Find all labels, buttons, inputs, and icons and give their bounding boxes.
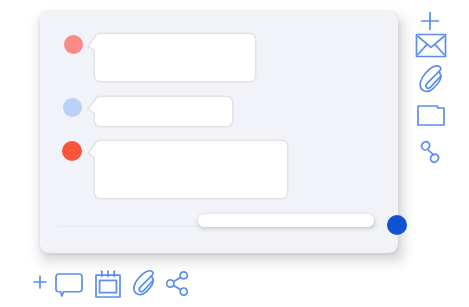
button[interactable]: Add (420, 11, 440, 31)
button[interactable]: Attach (417, 65, 445, 95)
button[interactable] (89, 141, 287, 198)
button[interactable] (62, 141, 82, 161)
button[interactable]: Add (33, 275, 47, 289)
button[interactable] (89, 34, 255, 81)
button[interactable]: Send (387, 215, 407, 235)
button[interactable]: Share (165, 270, 189, 297)
button[interactable] (64, 35, 83, 54)
button[interactable] (89, 97, 232, 126)
button[interactable]: Link (417, 137, 445, 168)
button[interactable]: Mail (416, 34, 446, 57)
button[interactable]: Attach (131, 270, 157, 298)
button[interactable]: Calendar (94, 270, 122, 299)
button[interactable]: Folder (416, 102, 446, 127)
button[interactable]: Comment (54, 272, 84, 298)
button[interactable] (198, 214, 374, 227)
button[interactable] (63, 98, 82, 117)
button[interactable] (40, 12, 398, 253)
